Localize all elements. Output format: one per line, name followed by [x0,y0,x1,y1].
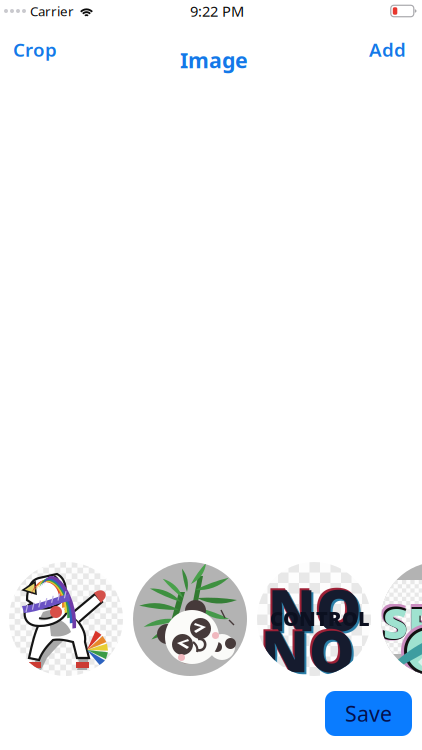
staticText: NO [270,573,364,649]
staticText: NO [261,612,355,688]
staticText: Add [369,37,406,62]
button[interactable]: Save [325,691,412,736]
staticText: Save [345,699,392,728]
button[interactable]: Panda sticker [133,562,247,676]
staticText: Carrier [30,2,74,20]
staticText: NO [259,610,353,686]
button[interactable]: Crop [13,31,57,68]
staticText: NO [268,571,362,647]
staticText: NO [266,569,360,645]
button[interactable]: Space sticker [381,562,422,676]
button[interactable]: Add [369,31,409,68]
staticText: NO [263,614,357,690]
staticText: 9:22 PM [190,1,244,21]
staticText: SPACE [383,594,422,707]
staticText: Image [180,46,248,74]
staticText: CONTROL [270,605,370,632]
button[interactable]: No Control sticker [257,562,371,676]
staticText: Crop [13,37,57,62]
button[interactable]: Unicorn sticker [9,562,123,676]
staticText: SPACE [381,591,422,715]
staticText: SPACE [379,588,422,719]
